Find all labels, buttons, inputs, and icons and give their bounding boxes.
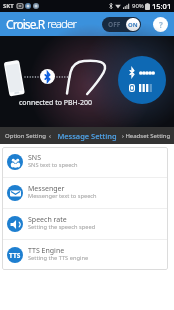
staticText: TTS Engine bbox=[28, 246, 65, 256]
staticText: SNS bbox=[28, 153, 42, 163]
button[interactable]: Messenger bbox=[2, 178, 168, 208]
button[interactable]: Speech rate bbox=[2, 209, 168, 239]
staticText: Setting the speech speed bbox=[28, 223, 96, 231]
staticText: SKT bbox=[3, 2, 14, 10]
staticText: Message Setting bbox=[57, 131, 117, 141]
staticText: › Headset Setting bbox=[122, 132, 171, 140]
staticText: Croise.R bbox=[6, 16, 45, 32]
button[interactable]: Headset status bbox=[118, 56, 166, 104]
staticText: SNS text to speech bbox=[28, 161, 78, 169]
staticText: ON bbox=[128, 21, 138, 29]
staticText: reader bbox=[47, 16, 77, 32]
staticText: Setting the TTS engine bbox=[28, 254, 89, 262]
staticText: 15:01 bbox=[152, 1, 172, 11]
staticText: Option Setting ‹ bbox=[5, 132, 51, 140]
button[interactable]: Help bbox=[153, 17, 168, 32]
staticText: ? bbox=[159, 19, 163, 30]
button[interactable]: TTS bbox=[2, 240, 168, 270]
button[interactable]: Option Setting ‹ bbox=[0, 127, 55, 144]
staticText: Messenger bbox=[28, 184, 65, 194]
staticText: TTS bbox=[9, 251, 21, 260]
staticText: OFF bbox=[108, 20, 121, 29]
button[interactable]: Message Setting bbox=[55, 127, 119, 144]
button[interactable]: › Headset Setting bbox=[119, 127, 174, 144]
button[interactable]: SNS bbox=[2, 147, 168, 177]
button[interactable]: Reader on/off bbox=[102, 17, 141, 32]
staticText: 90% bbox=[132, 2, 144, 10]
staticText: connected to PBH-200 bbox=[19, 98, 92, 108]
staticText: Speech rate bbox=[28, 215, 67, 225]
staticText: Messenger text to speech bbox=[28, 192, 97, 200]
